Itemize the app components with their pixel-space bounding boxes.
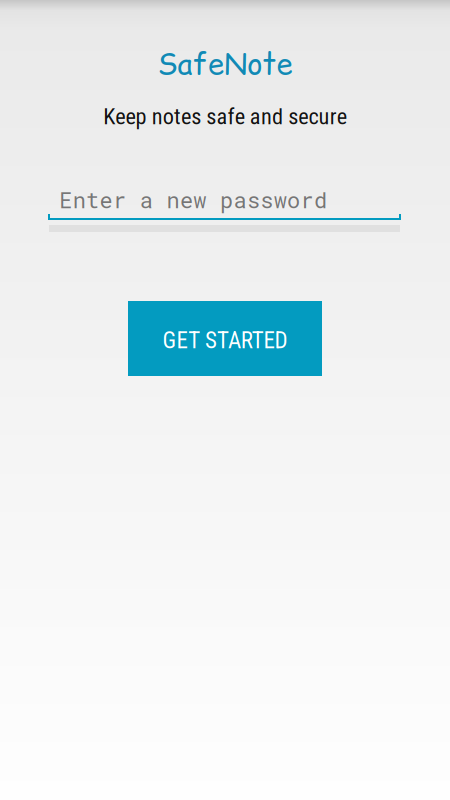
button[interactable]: Enter a new password <box>48 183 401 235</box>
staticText: Keep notes safe and secure <box>103 104 347 130</box>
staticText: SafeNote <box>157 43 293 84</box>
staticText: GET STARTED <box>162 327 287 354</box>
staticText: Enter a new password <box>59 185 327 214</box>
button[interactable]: GET STARTED <box>128 301 322 376</box>
